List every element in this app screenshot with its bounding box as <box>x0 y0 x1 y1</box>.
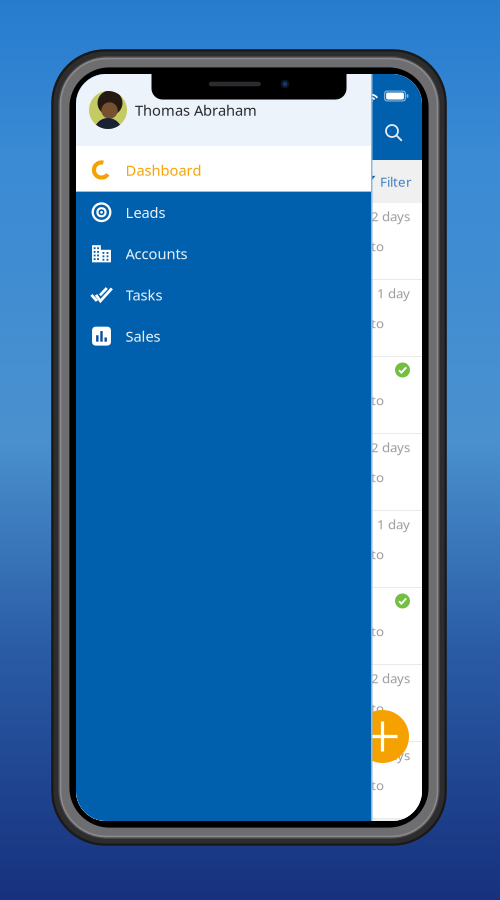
staticText: 2 days <box>371 207 410 225</box>
staticText: Assigned to Marcus Webb · Acme Group, du… <box>92 545 384 563</box>
staticText: 1 day <box>377 515 410 533</box>
button[interactable]: Prepare the estimate <box>76 434 422 511</box>
staticText: Leads <box>125 202 165 222</box>
button[interactable]: Dashboard <box>76 146 371 194</box>
button[interactable]: Tasks <box>76 274 371 315</box>
button[interactable]: Review contract terms <box>76 511 422 588</box>
staticText: Assigned to Marcus Webb · Acme Group, du… <box>92 391 384 409</box>
button[interactable]: Collect the signature <box>76 588 422 665</box>
staticText: Assigned to Marcus Webb · Acme Group, du… <box>92 237 384 255</box>
button[interactable]: Thomas Abraham <box>76 74 371 146</box>
button[interactable]: Follow up on the quote <box>76 203 422 280</box>
staticText: Dashboard <box>125 160 201 180</box>
staticText: 1 day <box>377 284 410 302</box>
button[interactable]: Search <box>373 112 415 154</box>
staticText: Assigned to Marcus Webb · Acme Group, du… <box>92 699 384 717</box>
staticText: Thomas Abraham <box>135 100 257 120</box>
staticText: Assigned to Marcus Webb · Acme Group, du… <box>92 314 384 332</box>
button[interactable]: Add <box>356 710 409 763</box>
button[interactable]: Send revised proposal <box>76 280 422 357</box>
staticText: Follow up on the quote <box>92 207 233 225</box>
button[interactable]: Accounts <box>76 233 371 274</box>
staticText: Assigned to Marcus Webb · Acme Group, du… <box>92 776 384 794</box>
staticText: Tasks <box>125 285 162 305</box>
button[interactable]: Sales <box>76 315 371 357</box>
staticText: 2 days <box>371 438 410 456</box>
button[interactable]: Leads <box>76 192 371 233</box>
staticText: Assigned to Marcus Webb · Acme Group, du… <box>92 468 384 486</box>
staticText: Sales <box>125 326 160 346</box>
staticText: Accounts <box>125 244 187 263</box>
staticText: 2 days <box>371 669 410 687</box>
button[interactable]: Plan the kick-off call <box>76 665 422 742</box>
staticText: Filter <box>380 173 412 190</box>
staticText: Assigned to Marcus Webb · Acme Group, du… <box>92 622 384 640</box>
staticText: Send revised proposal <box>92 284 226 302</box>
button[interactable]: Schedule product demo <box>76 357 422 434</box>
button[interactable]: Confirm the renewal <box>76 742 422 819</box>
button[interactable]: Filter <box>363 160 422 203</box>
staticText: 2 days <box>371 746 410 764</box>
